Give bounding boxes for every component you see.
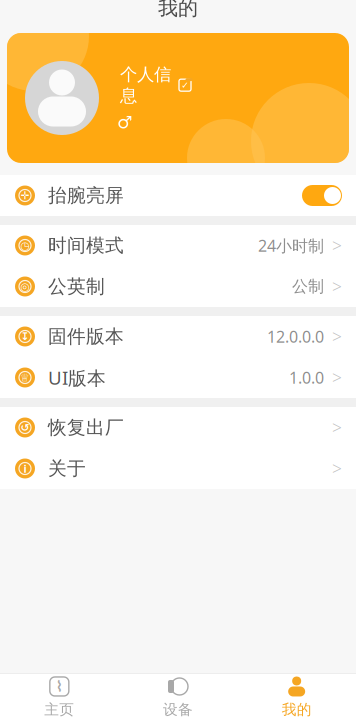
staticText: 时间模式 (48, 234, 124, 257)
staticText: > (332, 325, 342, 348)
button[interactable]: ◷ (0, 225, 356, 266)
staticText: ◷ (20, 239, 29, 251)
staticText: > (332, 457, 342, 480)
staticText: 主页 (44, 700, 74, 718)
button[interactable]: 设备 (119, 674, 237, 720)
staticText: 关于 (48, 457, 86, 480)
staticText: 个人信息 (120, 64, 171, 106)
staticText: ⌇ (56, 678, 63, 695)
staticText: ↺ (20, 421, 29, 433)
staticText: 12.0.0.0 (267, 326, 324, 347)
button[interactable]: i (0, 448, 356, 489)
staticText: > (332, 234, 342, 257)
button[interactable]: ⌇ (0, 674, 119, 720)
staticText: 固件版本 (48, 325, 124, 348)
staticText: 恢复出厂 (48, 416, 124, 439)
button[interactable]: ◎ (0, 266, 356, 307)
staticText: 公英制 (48, 275, 105, 298)
staticText: ✛ (20, 189, 29, 201)
staticText: ♕ (20, 371, 30, 383)
staticText: 我的 (158, 0, 198, 20)
button[interactable]: ✛ (0, 175, 356, 216)
staticText: 我的 (282, 700, 312, 718)
staticText: ◎ (20, 280, 29, 292)
staticText: > (332, 275, 342, 298)
staticText: ✓ (181, 80, 189, 90)
staticText: 公制 (292, 277, 324, 296)
button[interactable]: ↧ (0, 316, 356, 357)
staticText: i (23, 461, 26, 476)
staticText: 1.0.0 (289, 367, 324, 388)
staticText: ♂ (117, 112, 133, 132)
staticText: 24小时制 (258, 235, 324, 256)
button[interactable]: ♕ (0, 357, 356, 398)
button[interactable]: ↺ (0, 407, 356, 448)
button[interactable]: 我的 (237, 674, 356, 720)
staticText: ↧ (20, 330, 29, 342)
staticText: 设备 (163, 700, 193, 718)
staticText: 抬腕亮屏 (48, 184, 124, 207)
staticText: > (332, 416, 342, 439)
button[interactable]: 个人信息 (7, 33, 349, 163)
staticText: > (332, 366, 342, 389)
staticText: UI版本 (48, 365, 106, 390)
